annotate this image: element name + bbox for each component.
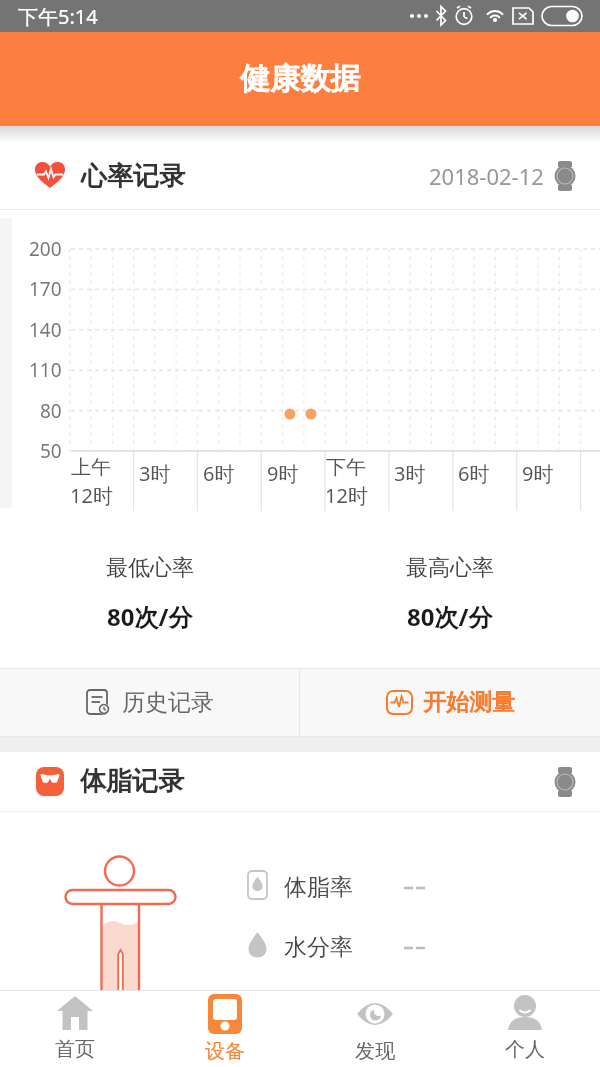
- staticText: 上午: [71, 455, 111, 480]
- button[interactable]: 心率记录: [0, 143, 600, 209]
- staticText: 设备: [205, 1039, 245, 1064]
- staticText: 9时: [267, 460, 299, 486]
- button[interactable]: 体脂记录: [0, 752, 600, 811]
- staticText: 水分率: [284, 933, 353, 962]
- staticText: 最高心率: [406, 554, 494, 582]
- staticText: 12时: [325, 482, 368, 508]
- staticText: 体脂率: [284, 873, 353, 902]
- staticText: 发现: [355, 1039, 395, 1064]
- staticText: 历史记录: [122, 688, 214, 717]
- staticText: 2018-02-12: [429, 161, 544, 191]
- button[interactable]: 开始测量: [300, 669, 600, 736]
- staticText: 110: [29, 357, 62, 383]
- staticText: 开始测量: [423, 688, 515, 717]
- button[interactable]: 个人: [450, 991, 600, 1067]
- staticText: 140: [29, 317, 62, 343]
- staticText: 3时: [139, 460, 171, 486]
- button[interactable]: 发现: [300, 991, 450, 1067]
- staticText: 个人: [505, 1037, 545, 1062]
- staticText: 200: [29, 236, 62, 262]
- button[interactable]: 历史记录: [0, 669, 299, 736]
- staticText: 170: [29, 276, 62, 302]
- staticText: 3时: [394, 460, 426, 486]
- staticText: 下午5:14: [18, 3, 98, 30]
- staticText: 下午: [326, 455, 366, 480]
- staticText: 心率记录: [81, 160, 185, 193]
- staticText: 最低心率: [106, 554, 194, 582]
- staticText: 80: [40, 398, 62, 424]
- staticText: 50: [40, 438, 62, 464]
- staticText: 6时: [458, 460, 490, 486]
- button[interactable]: 设备: [150, 991, 300, 1067]
- staticText: 9时: [522, 460, 554, 486]
- staticText: 80次/分: [107, 600, 193, 633]
- button[interactable]: 首页: [0, 991, 150, 1067]
- staticText: 首页: [55, 1037, 95, 1062]
- staticText: 6时: [203, 460, 235, 486]
- staticText: 12时: [70, 482, 113, 508]
- staticText: 健康数据: [240, 60, 360, 98]
- staticText: 体脂记录: [80, 765, 184, 798]
- staticText: 80次/分: [407, 600, 493, 633]
